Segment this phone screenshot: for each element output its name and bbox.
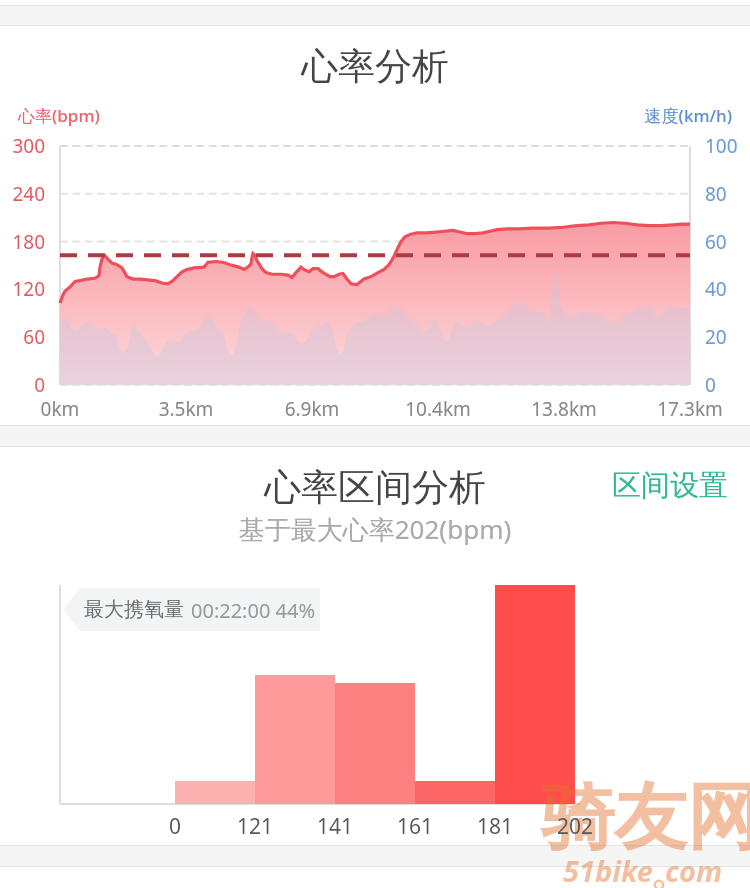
staticText: 速度(km/h)	[0, 104, 732, 127]
staticText: 心率分析	[0, 43, 750, 90]
staticText: 300	[0, 133, 45, 159]
staticText: 180	[0, 229, 45, 255]
staticText: 0	[0, 372, 45, 398]
staticText: 13.8km	[504, 396, 624, 422]
button[interactable]: 区间设置	[608, 463, 732, 508]
staticText: 3.5km	[126, 396, 246, 422]
staticText: 100	[705, 133, 750, 159]
staticText: 202	[525, 812, 625, 841]
staticText: 121	[205, 812, 305, 841]
staticText: 6.9km	[252, 396, 372, 422]
staticText: 0km	[0, 396, 120, 422]
staticText: 骑友网	[541, 772, 750, 864]
staticText: 心率区间分析	[0, 464, 750, 511]
staticText: 最大携氧量	[84, 597, 184, 622]
staticText: 心率(bpm)	[18, 104, 100, 127]
staticText: 10.4km	[378, 396, 498, 422]
staticText: 181	[445, 812, 545, 841]
staticText: 17.3km	[630, 396, 750, 422]
staticText: 20	[705, 324, 750, 350]
staticText: com	[665, 851, 723, 888]
staticText: 80	[705, 181, 750, 207]
staticText: 基于最大心率202(bpm)	[0, 511, 750, 547]
staticText: 0	[705, 372, 750, 398]
staticText: 00:22:00 44%	[191, 597, 316, 624]
staticText: 240	[0, 181, 45, 207]
staticText: 120	[0, 276, 45, 302]
staticText: 141	[285, 812, 385, 841]
staticText: 51bike	[563, 851, 653, 888]
staticText: 60	[0, 324, 45, 350]
staticText: 161	[365, 812, 465, 841]
staticText: 60	[705, 229, 750, 255]
staticText: 0	[125, 812, 225, 841]
staticText: 区间设置	[612, 467, 728, 504]
staticText: 40	[705, 276, 750, 302]
